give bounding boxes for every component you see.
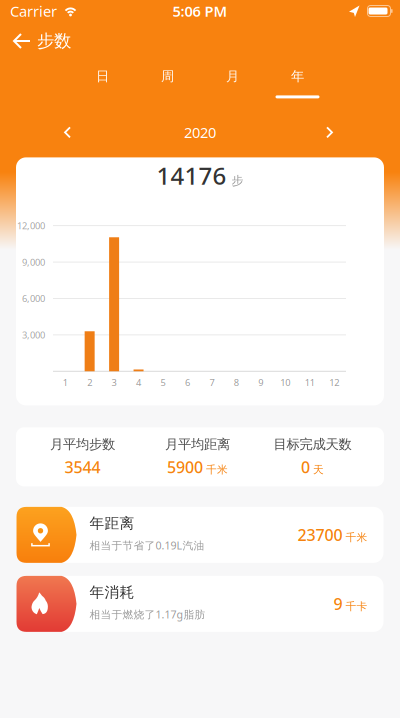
staticText: 相当于燃烧了1.17g脂肪 bbox=[89, 607, 205, 621]
staticText: 14176 bbox=[156, 159, 226, 191]
staticText: 23700 bbox=[297, 524, 342, 545]
staticText: 相当于节省了0.19L汽油 bbox=[89, 538, 204, 552]
staticText: 千卡 bbox=[345, 600, 367, 613]
staticText: 3544 bbox=[64, 456, 100, 478]
staticText: 5 bbox=[160, 376, 165, 389]
staticText: 周 bbox=[161, 68, 174, 84]
staticText: 年距离 bbox=[89, 514, 134, 532]
staticText: 0 bbox=[301, 456, 310, 478]
staticText: 6,000 bbox=[22, 292, 45, 305]
staticText: 6 bbox=[185, 376, 190, 389]
button[interactable] bbox=[0, 126, 71, 138]
staticText: 天 bbox=[313, 463, 324, 476]
staticText: 3,000 bbox=[22, 329, 45, 341]
button[interactable]: 日 bbox=[80, 68, 124, 98]
staticText: 4 bbox=[136, 376, 141, 389]
staticText: 2020 bbox=[184, 123, 216, 142]
staticText: Carrier bbox=[10, 1, 57, 21]
staticText: 7 bbox=[209, 376, 214, 389]
staticText: 步数 bbox=[37, 30, 71, 52]
staticText: 年 bbox=[291, 68, 304, 84]
staticText: 5:06 PM bbox=[172, 1, 227, 21]
staticText: 月平均距离 bbox=[165, 436, 230, 452]
staticText: 步 bbox=[231, 173, 243, 188]
button[interactable]: 年距离 bbox=[16, 507, 383, 563]
button[interactable]: 年消耗 bbox=[16, 576, 383, 632]
staticText: 9 bbox=[258, 376, 263, 389]
button[interactable]: 年 bbox=[275, 68, 319, 98]
staticText: 千米 bbox=[345, 531, 367, 544]
staticText: 11 bbox=[305, 376, 315, 389]
staticText: 9 bbox=[333, 593, 342, 614]
staticText: 月 bbox=[226, 68, 239, 84]
staticText: 1 bbox=[63, 376, 68, 389]
staticText: 3 bbox=[112, 376, 117, 389]
button[interactable] bbox=[326, 126, 400, 138]
staticText: 年消耗 bbox=[89, 583, 134, 601]
button[interactable]: 周 bbox=[145, 68, 189, 98]
staticText: 2 bbox=[87, 376, 92, 389]
staticText: 日 bbox=[96, 68, 109, 84]
staticText: 千米 bbox=[206, 463, 228, 476]
staticText: 5900 bbox=[167, 456, 203, 478]
staticText: 9,000 bbox=[22, 256, 45, 268]
staticText: 月平均步数 bbox=[50, 436, 115, 452]
button[interactable] bbox=[0, 33, 31, 49]
button[interactable]: 月 bbox=[210, 68, 254, 98]
staticText: 12 bbox=[329, 376, 339, 389]
staticText: 目标完成天数 bbox=[273, 436, 351, 452]
staticText: 12,000 bbox=[17, 219, 45, 232]
staticText: 10 bbox=[280, 376, 290, 389]
staticText: 8 bbox=[234, 376, 239, 389]
